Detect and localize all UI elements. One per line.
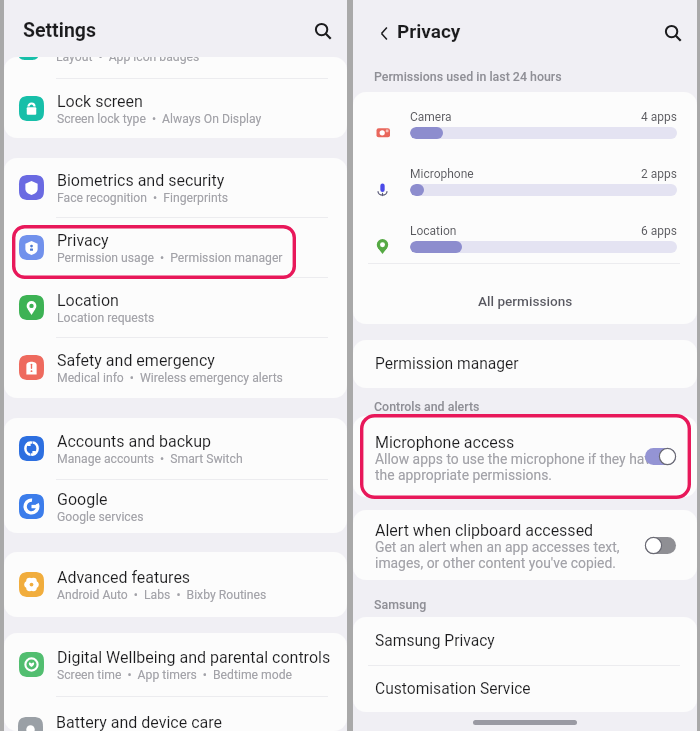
button[interactable]: Safety and emergency: [4, 338, 347, 397]
button[interactable]: Samsung Privacy: [353, 617, 697, 665]
button[interactable]: Customisation Service: [353, 666, 697, 712]
staticText: Location: [410, 224, 457, 238]
staticText: Screen time • App timers • Bedtime mode: [57, 668, 293, 682]
staticText: Settings: [23, 19, 96, 42]
staticText: Google: [57, 490, 108, 509]
staticText: Face recognition • Fingerprints: [57, 191, 229, 205]
button[interactable]: Permission manager: [353, 340, 697, 388]
button[interactable]: Digital Wellbeing and parental controls: [4, 633, 347, 696]
staticText: Permission usage • Permission manager: [57, 251, 283, 265]
staticText: Microphone: [410, 167, 474, 181]
staticText: Get an alert when an app accesses text, …: [375, 539, 620, 572]
staticText: 4 apps: [641, 110, 677, 124]
button[interactable]: Alert when clipboard accessed: [353, 510, 697, 580]
button[interactable]: Back: [369, 18, 399, 48]
staticText: Permission manager: [375, 355, 519, 373]
staticText: Digital Wellbeing and parental controls: [57, 648, 331, 667]
button[interactable]: Search: [307, 15, 339, 47]
staticText: Manage accounts • Smart Switch: [57, 452, 243, 466]
staticText: Biometrics and security: [57, 171, 225, 190]
staticText: Layout • App icon badges: [56, 57, 200, 64]
button[interactable]: Advanced features: [4, 552, 347, 617]
staticText: Accounts and backup: [57, 432, 211, 451]
staticText: Samsung: [374, 597, 427, 612]
staticText: Samsung Privacy: [375, 632, 495, 650]
staticText: Android Auto • Labs • Bixby Routines: [57, 588, 267, 602]
button[interactable]: All permissions: [353, 263, 697, 324]
staticText: Safety and emergency: [57, 351, 215, 370]
button[interactable]: Lock screen: [4, 79, 347, 138]
button[interactable]: Biometrics and security: [4, 158, 347, 217]
button[interactable]: Search: [657, 17, 689, 49]
button[interactable]: Privacy: [4, 218, 347, 277]
staticText: Permissions used in last 24 hours: [374, 69, 562, 84]
staticText: Location: [57, 291, 119, 310]
staticText: Alert when clipboard accessed: [375, 521, 594, 540]
staticText: Privacy: [57, 231, 109, 250]
staticText: 2 apps: [641, 167, 677, 181]
staticText: Location requests: [57, 311, 155, 325]
staticText: 6 apps: [641, 224, 677, 238]
staticText: Controls and alerts: [374, 399, 480, 414]
staticText: Customisation Service: [375, 680, 531, 698]
staticText: Privacy: [397, 20, 461, 42]
staticText: All permissions: [478, 293, 573, 309]
button[interactable]: Accounts and backup: [4, 418, 347, 479]
staticText: Battery and device care: [56, 713, 222, 731]
staticText: Camera: [410, 110, 452, 124]
staticText: Microphone access: [375, 433, 515, 452]
staticText: Lock screen: [57, 92, 143, 111]
staticText: Screen lock type • Always On Display: [57, 112, 262, 126]
button[interactable]: Location: [4, 278, 347, 337]
button[interactable]: Microphone access: [353, 416, 697, 497]
staticText: Advanced features: [57, 568, 191, 587]
staticText: Medical info • Wireless emergency alerts: [57, 371, 283, 385]
staticText: Allow apps to use the microphone if they…: [375, 451, 659, 484]
staticText: Google services: [57, 510, 144, 524]
button[interactable]: Google: [4, 480, 347, 533]
